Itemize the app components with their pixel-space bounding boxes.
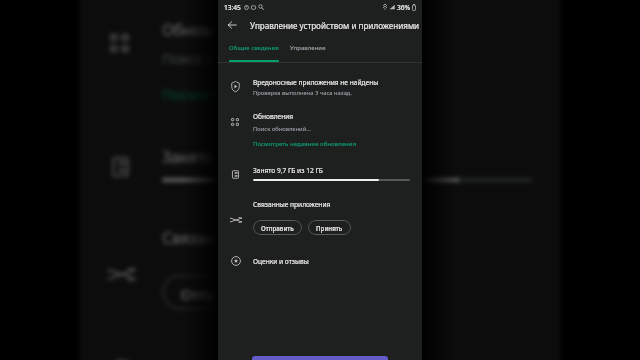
staticText: 13:45: [224, 3, 241, 12]
staticText: Посмотреть недавние обновления: [162, 86, 407, 104]
button[interactable]: Принять: [308, 220, 351, 235]
staticText: Управление устройством и приложениями: [250, 20, 420, 31]
staticText: Общие сведения: [229, 44, 279, 52]
button[interactable]: Обновления: [218, 112, 422, 152]
button[interactable]: Связанные приложения: [79, 227, 561, 317]
button[interactable]: Занято 9,7 ГБ из 12 ГБ: [218, 166, 422, 190]
staticText: Вредоносные приложения не найдены: [253, 78, 379, 87]
button[interactable]: Вредоносные приложения не найдены: [218, 78, 422, 100]
staticText: Отправить: [181, 284, 259, 303]
button[interactable]: Посмотреть недавние обновления: [162, 86, 407, 104]
button[interactable]: [252, 356, 388, 360]
button[interactable]: Оценки и отзывы: [79, 350, 561, 360]
button[interactable]: Общие сведения: [229, 40, 279, 62]
button[interactable]: Обновления: [79, 19, 561, 114]
button[interactable]: Назад: [218, 15, 250, 35]
staticText: Принять: [316, 224, 343, 232]
staticText: Занято 9,7 ГБ из 12 ГБ: [162, 147, 327, 168]
staticText: Проверка выполнена 3 часа назад.: [253, 89, 353, 97]
staticText: Связанные приложения: [253, 200, 331, 209]
staticText: 36%: [397, 3, 411, 12]
staticText: Отправить: [261, 224, 294, 232]
staticText: Обновления: [162, 19, 259, 41]
staticText: Занято 9,7 ГБ из 12 ГБ: [253, 166, 323, 175]
button[interactable]: Отправить: [253, 220, 302, 235]
staticText: Поиск обновлений…: [162, 50, 299, 69]
staticText: Посмотреть недавние обновления: [253, 140, 357, 148]
button[interactable]: Занято 9,7 ГБ из 12 ГБ: [79, 147, 561, 204]
staticText: Оценки и отзывы: [253, 257, 309, 266]
button[interactable]: Связанные приложения: [218, 200, 422, 238]
button[interactable]: Отправить: [162, 274, 277, 310]
staticText: Обновления: [253, 112, 294, 121]
staticText: Поиск обновлений…: [253, 125, 311, 133]
staticText: Управление: [290, 44, 326, 52]
button[interactable]: Посмотреть недавние обновления: [253, 140, 357, 148]
button[interactable]: Управление: [290, 40, 326, 62]
staticText: Связанные приложения: [162, 227, 346, 248]
button[interactable]: Оценки и отзывы: [218, 252, 422, 270]
